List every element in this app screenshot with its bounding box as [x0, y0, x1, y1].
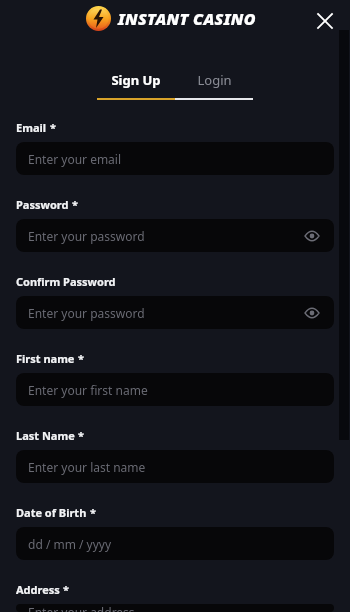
- button[interactable]: Close: [308, 4, 342, 38]
- staticText: Enter your last name: [28, 459, 146, 475]
- staticText: INSTANT CASINO: [118, 8, 256, 30]
- staticText: Enter your address: [28, 604, 135, 612]
- staticText: *: [72, 197, 78, 212]
- button[interactable]: Enter your first name: [16, 373, 334, 406]
- button[interactable]: dd / mm / yyyy: [16, 527, 334, 560]
- staticText: *: [78, 351, 84, 366]
- staticText: Enter your first name: [28, 382, 148, 398]
- staticText: Address: [16, 582, 60, 597]
- staticText: *: [90, 505, 96, 520]
- staticText: Login: [197, 71, 232, 89]
- staticText: *: [78, 428, 84, 443]
- staticText: dd / mm / yyyy: [28, 536, 112, 552]
- button[interactable]: Enter your password: [16, 219, 334, 252]
- staticText: *: [50, 120, 56, 135]
- staticText: Last Name: [16, 428, 75, 443]
- button[interactable]: Show password: [302, 303, 322, 323]
- staticText: Enter your email: [28, 151, 122, 167]
- button[interactable]: Enter your password: [16, 296, 334, 329]
- staticText: Date of Birth: [16, 505, 87, 520]
- staticText: *: [63, 582, 69, 597]
- button[interactable]: Sign Up: [97, 69, 175, 91]
- staticText: Confirm Password: [16, 274, 116, 289]
- button[interactable]: Login: [175, 69, 253, 91]
- staticText: Enter your password: [28, 228, 145, 244]
- staticText: Sign Up: [111, 71, 161, 89]
- staticText: First name: [16, 351, 75, 366]
- button[interactable]: Enter your address: [16, 604, 334, 612]
- staticText: Password: [16, 197, 69, 212]
- button[interactable]: Show password: [302, 226, 322, 246]
- button[interactable]: Enter your email: [16, 142, 334, 175]
- staticText: Enter your password: [28, 305, 145, 321]
- button[interactable]: Enter your last name: [16, 450, 334, 483]
- staticText: Email: [16, 120, 47, 135]
